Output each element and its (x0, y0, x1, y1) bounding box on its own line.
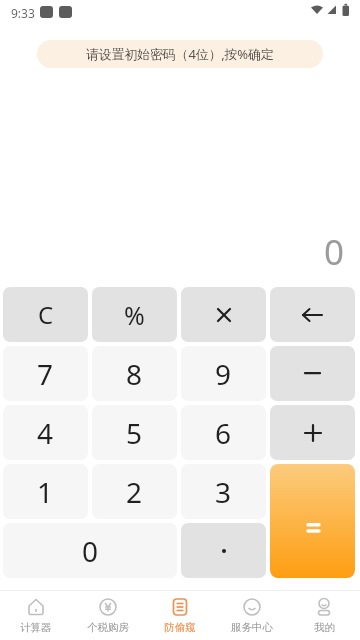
button[interactable]: 8 (92, 346, 177, 401)
button[interactable]: 0 (3, 523, 177, 578)
staticText: 9:33 (11, 5, 35, 21)
staticText: 4 (37, 414, 54, 452)
staticText: 5 (126, 414, 143, 452)
staticText: 个税购房 (87, 621, 129, 634)
button[interactable] (181, 523, 266, 578)
staticText: C (38, 298, 54, 331)
staticText: 3 (215, 473, 232, 511)
button[interactable] (270, 287, 355, 342)
staticText: 1 (37, 473, 54, 511)
button[interactable]: 4 (3, 405, 88, 460)
button[interactable]: 我的 (288, 590, 360, 640)
button[interactable]: 2 (92, 464, 177, 519)
button[interactable]: 6 (181, 405, 266, 460)
staticText: % (124, 298, 145, 332)
button[interactable]: 服务中心 (216, 590, 288, 640)
staticText: 防偷窥 (164, 621, 196, 634)
button[interactable] (181, 287, 266, 342)
button[interactable]: 请设置初始密码（4位）,按%确定 (37, 40, 323, 68)
button[interactable]: % (92, 287, 177, 342)
button[interactable]: 个税购房 (72, 590, 144, 640)
staticText: 计算器 (20, 621, 52, 634)
button[interactable]: 1 (3, 464, 88, 519)
staticText: 0 (82, 532, 99, 570)
staticText: 服务中心 (231, 621, 273, 634)
button[interactable] (270, 464, 355, 578)
button[interactable] (270, 405, 355, 460)
button[interactable]: 7 (3, 346, 88, 401)
staticText: 7 (37, 355, 54, 393)
button[interactable]: C (3, 287, 88, 342)
button[interactable]: 5 (92, 405, 177, 460)
button[interactable]: 计算器 (0, 590, 72, 640)
button[interactable] (270, 346, 355, 401)
staticText: 0 (324, 228, 345, 276)
staticText: 2 (126, 473, 143, 511)
staticText: 8 (126, 355, 143, 393)
button[interactable]: 3 (181, 464, 266, 519)
staticText: 请设置初始密码（4位）,按%确定 (86, 45, 274, 63)
button[interactable]: 9 (181, 346, 266, 401)
staticText: 6 (215, 414, 232, 452)
staticText: 9 (215, 355, 232, 393)
button[interactable]: 防偷窥 (144, 590, 216, 640)
staticText: 我的 (314, 621, 335, 634)
